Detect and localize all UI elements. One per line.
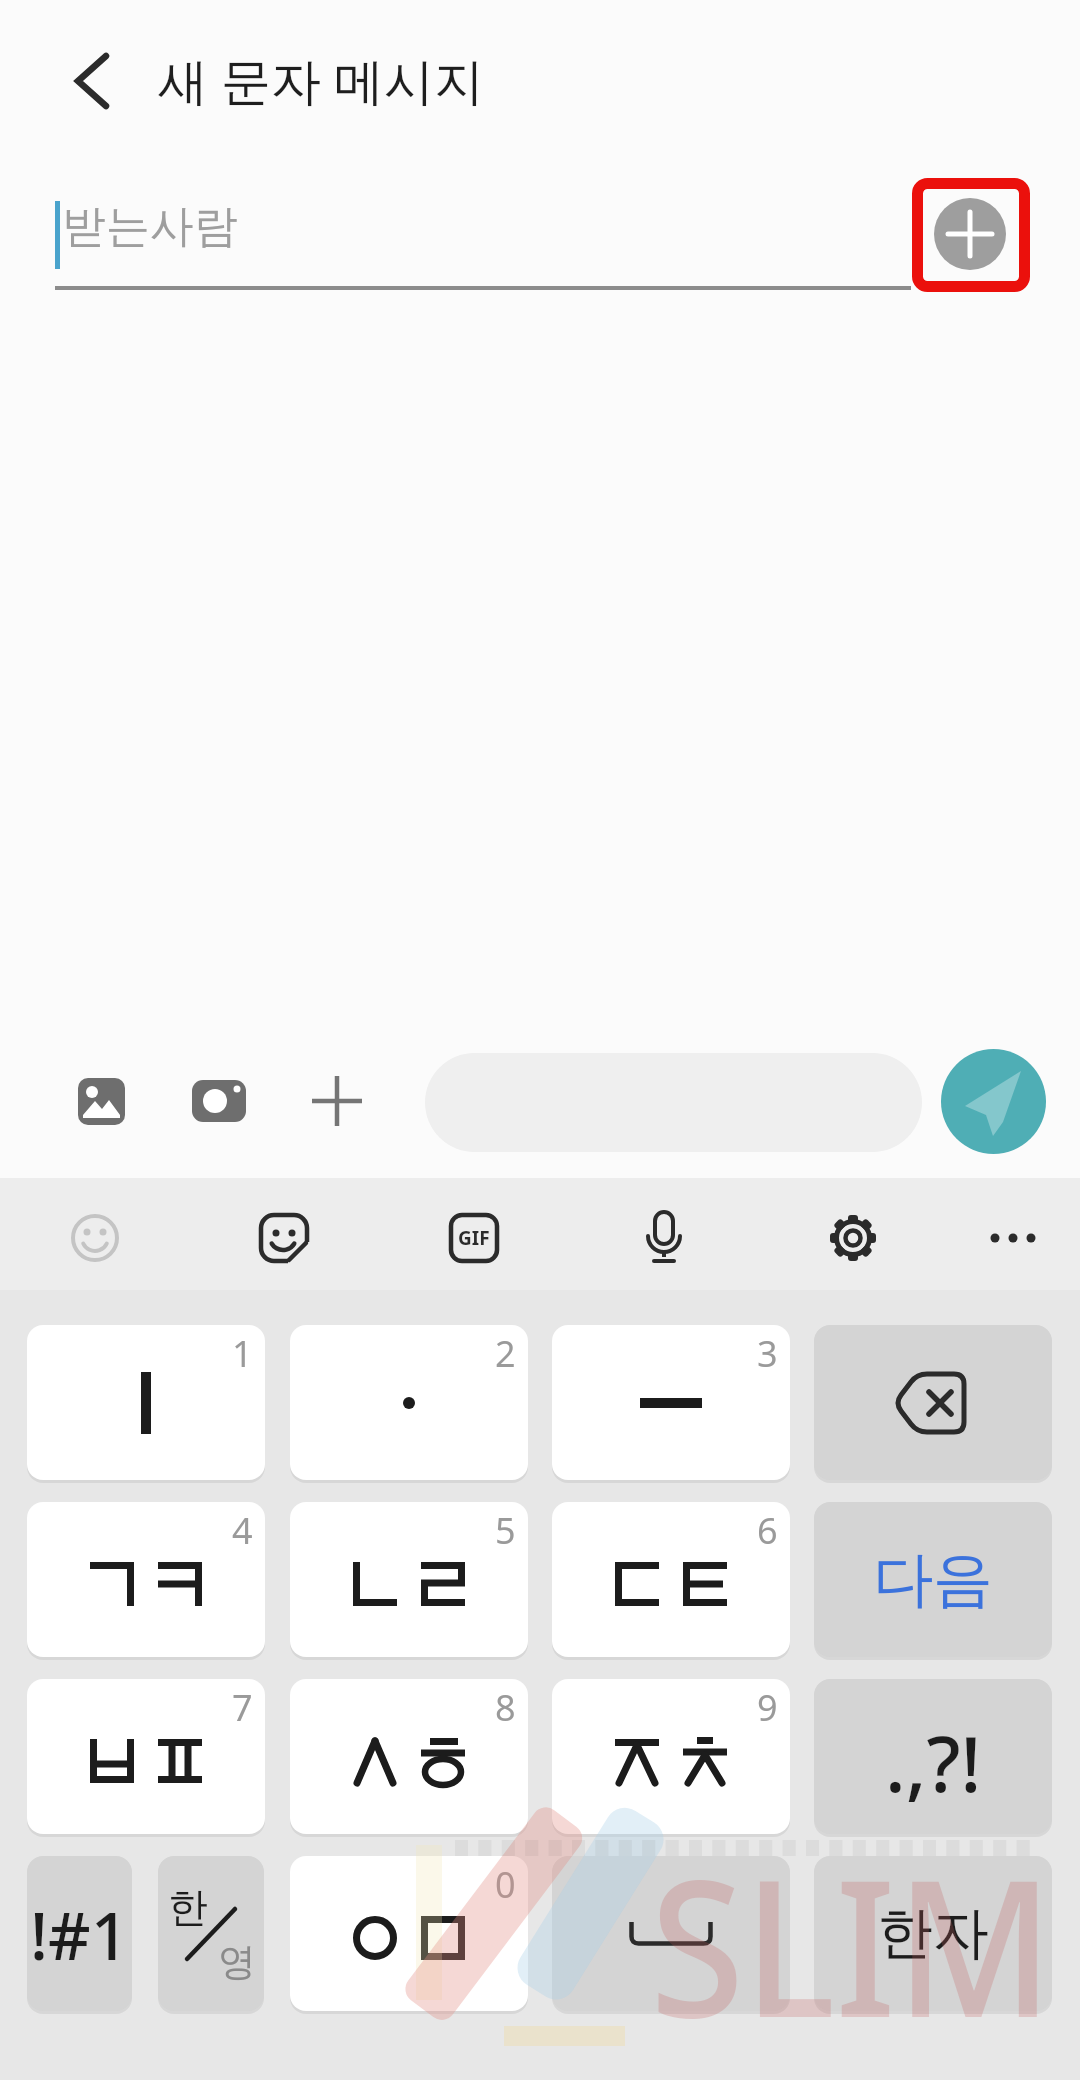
staticText: 8	[495, 1683, 516, 1732]
button[interactable]	[78, 1078, 125, 1125]
staticText: 9	[757, 1683, 778, 1732]
button[interactable]: 한	[158, 1856, 264, 2011]
button[interactable]: 8	[290, 1679, 528, 1834]
button[interactable]: !#1	[27, 1856, 132, 2011]
button[interactable]: 9	[552, 1679, 790, 1834]
staticText: 4	[232, 1506, 253, 1555]
button[interactable]: 3	[552, 1325, 790, 1480]
staticText: 6	[757, 1506, 778, 1555]
button[interactable]: 6	[552, 1502, 790, 1657]
button[interactable]: 한자	[814, 1856, 1052, 2011]
staticText: 영	[218, 1938, 256, 1986]
staticText: 0	[495, 1860, 516, 1909]
staticText: 7	[232, 1683, 253, 1732]
button[interactable]	[192, 1080, 246, 1122]
staticText: !#1	[30, 1889, 129, 1979]
staticText: 2	[495, 1329, 516, 1378]
button[interactable]: 7	[27, 1679, 265, 1834]
button[interactable]: 다음	[814, 1502, 1052, 1657]
button[interactable]	[72, 53, 112, 113]
button[interactable]	[941, 1049, 1046, 1154]
staticText: 다음	[873, 1542, 993, 1618]
button[interactable]	[814, 1325, 1052, 1480]
staticText: .,?!	[885, 1711, 982, 1815]
button[interactable]: GIF	[450, 1214, 498, 1262]
staticText: 한자	[877, 1898, 989, 1969]
button[interactable]	[552, 1856, 790, 2011]
staticText: SLIM	[650, 1814, 1053, 2073]
staticText: 1	[232, 1329, 253, 1378]
button[interactable]	[312, 1076, 362, 1126]
button[interactable]: 2	[290, 1325, 528, 1480]
button[interactable]: 5	[290, 1502, 528, 1657]
button[interactable]	[934, 198, 1006, 270]
button[interactable]	[985, 1228, 1045, 1248]
staticText: 3	[757, 1329, 778, 1378]
button[interactable]: .,?!	[814, 1679, 1052, 1834]
button[interactable]	[260, 1214, 308, 1262]
button[interactable]: 0	[290, 1856, 528, 2011]
staticText: 한	[168, 1882, 208, 1932]
button[interactable]: 1	[27, 1325, 265, 1480]
staticText: 5	[495, 1506, 516, 1555]
button[interactable]	[829, 1214, 877, 1262]
staticText: 받는사람	[62, 199, 238, 254]
button[interactable]	[71, 1214, 119, 1262]
button[interactable]: 4	[27, 1502, 265, 1657]
button[interactable]	[640, 1210, 688, 1266]
staticText: GIF	[458, 1225, 490, 1251]
staticText: 새 문자 메시지	[158, 46, 484, 114]
